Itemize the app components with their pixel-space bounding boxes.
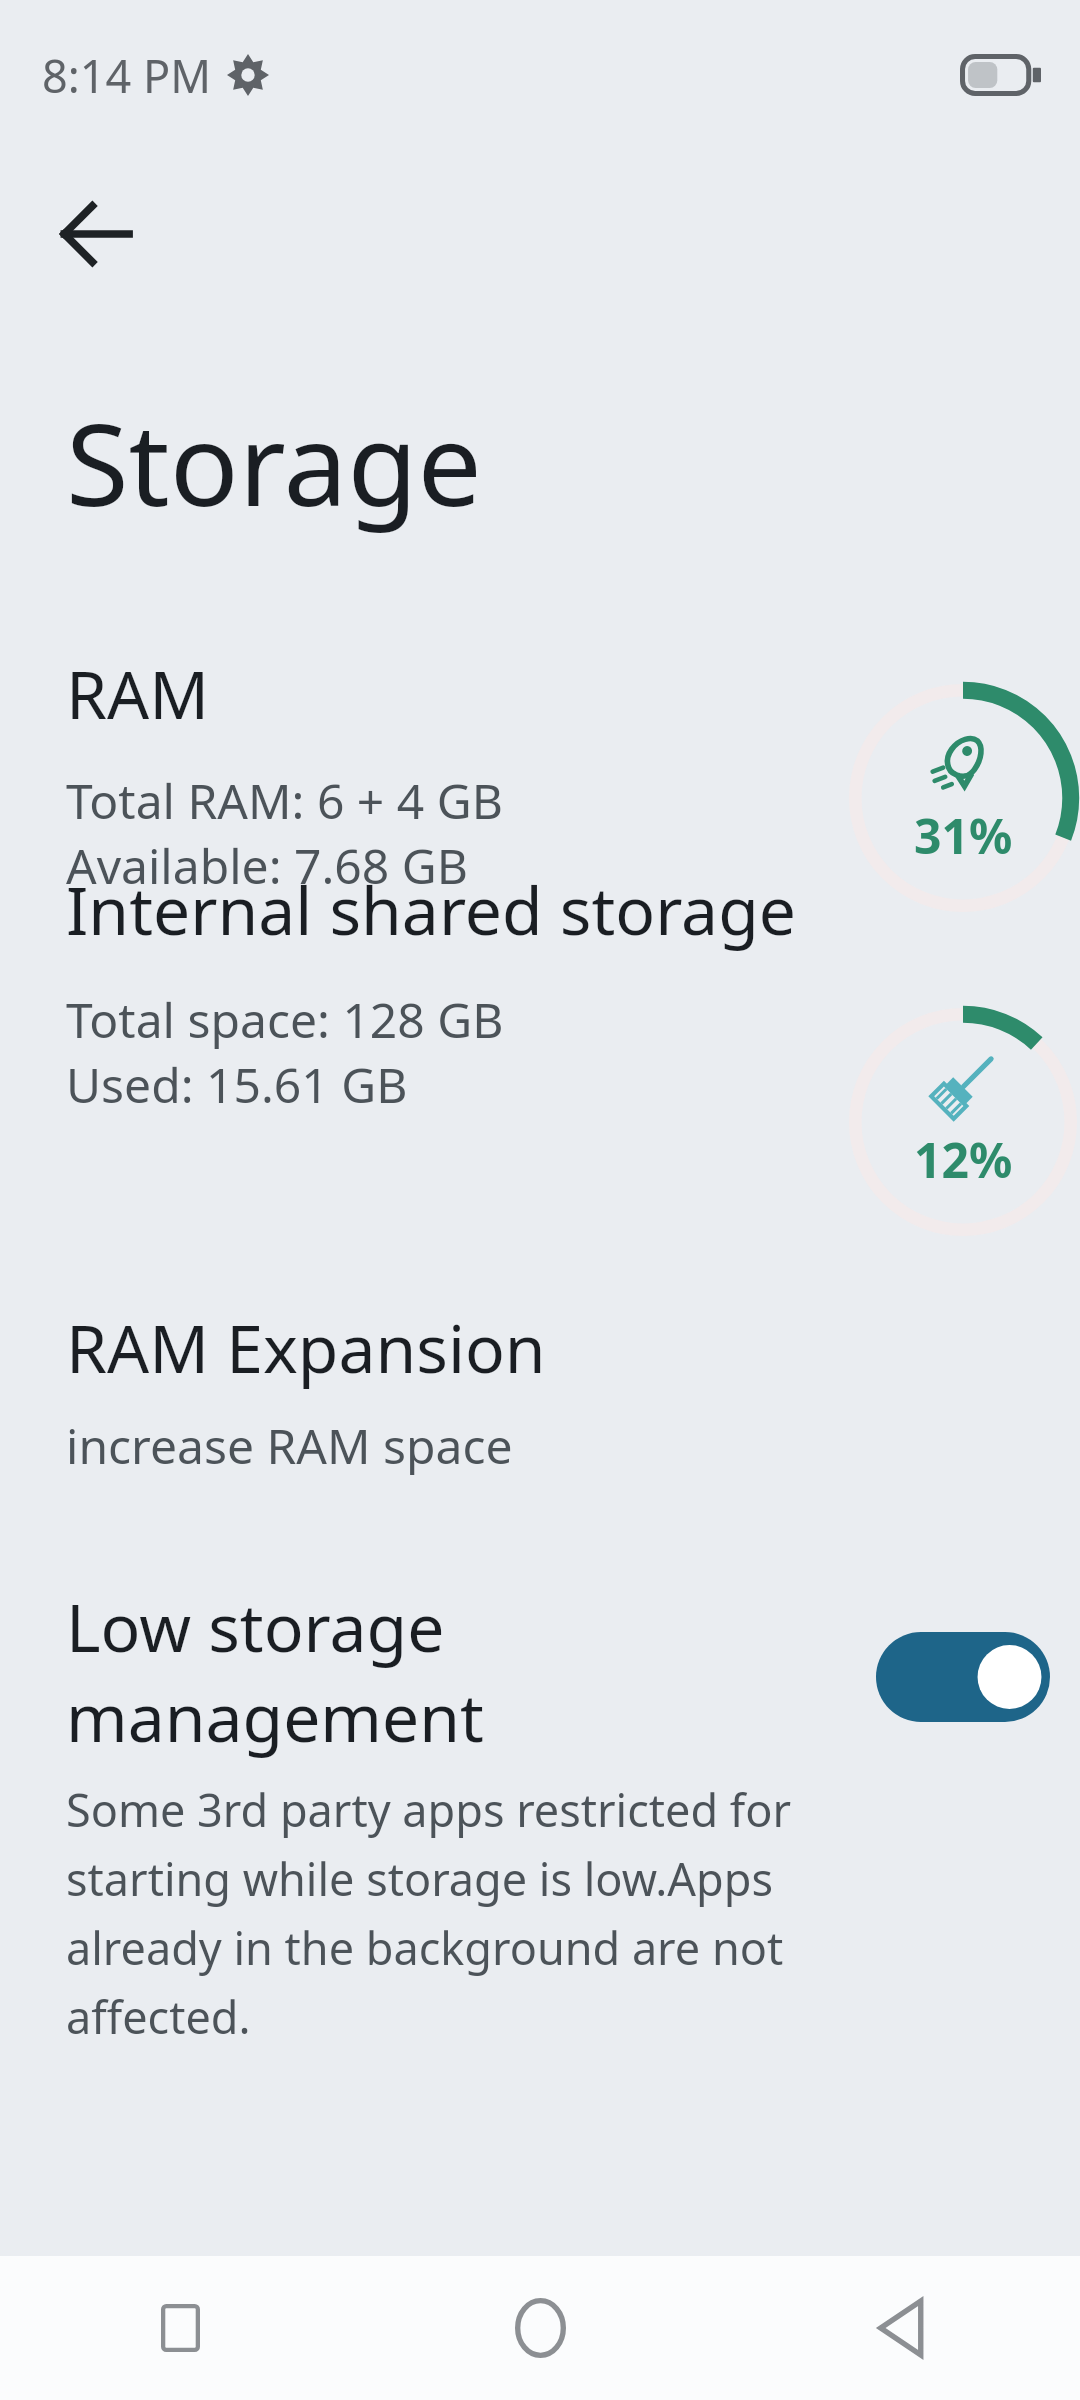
staticText: Storage xyxy=(66,384,482,539)
staticText: 31% xyxy=(914,803,1013,868)
button[interactable]: Home xyxy=(360,2256,720,2400)
staticText: Available: 7.68 GB xyxy=(66,833,468,898)
button[interactable]: Low storage management xyxy=(876,1632,1050,1722)
button[interactable]: Low storage management xyxy=(0,1575,1080,2065)
button[interactable]: Internal shared storage xyxy=(48,852,798,1129)
staticText: Used: 15.61 GB xyxy=(66,1052,408,1117)
staticText: RAM Expansion xyxy=(66,1302,546,1392)
staticText: Total space: 128 GB xyxy=(66,987,504,1052)
staticText: Internal shared storage xyxy=(66,864,796,954)
button[interactable]: Back xyxy=(12,45,180,213)
button[interactable]: RAM xyxy=(48,636,798,910)
staticText: 8:14 PM xyxy=(42,45,212,106)
staticText: Some 3rd party apps restricted for start… xyxy=(66,1779,858,2047)
staticText: 12% xyxy=(914,1127,1013,1192)
staticText: RAM xyxy=(66,648,210,738)
button[interactable]: Recents xyxy=(0,2256,360,2400)
button[interactable]: RAM Expansion xyxy=(48,1290,1080,1496)
button[interactable]: Back xyxy=(720,2256,1080,2400)
staticText: increase RAM space xyxy=(66,1413,513,1478)
staticText: Low storage management xyxy=(66,1581,858,1761)
staticText: Total RAM: 6 + 4 GB xyxy=(66,768,503,833)
